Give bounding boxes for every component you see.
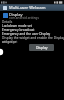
staticText: com.android.settings (9, 16, 39, 20)
staticText: set widget (2, 40, 18, 44)
staticText: Multi-user Webcam (9, 5, 46, 10)
button[interactable]: Lockdown mode set (2, 24, 32, 28)
button[interactable]: Emergency and the user Display (2, 32, 51, 36)
button[interactable]: Emergency broadcast (2, 28, 35, 32)
staticText: Details (2, 20, 13, 24)
staticText: Display (36, 45, 48, 50)
button[interactable]: Display (29, 44, 54, 51)
staticText: Display (9, 12, 23, 17)
staticText: Display the widget and enable the Displa… (2, 36, 64, 44)
